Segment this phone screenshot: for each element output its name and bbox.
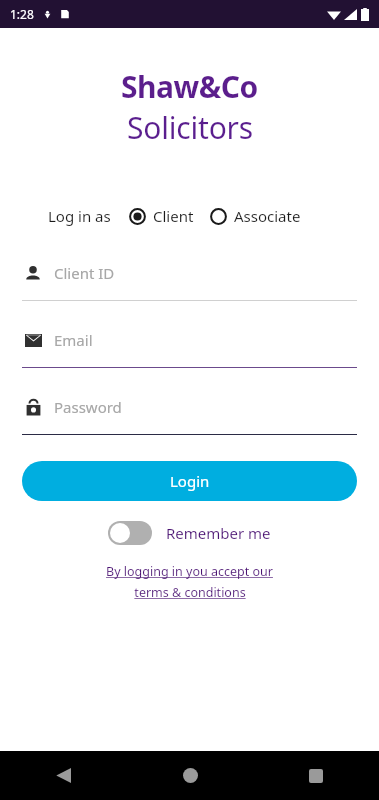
button[interactable]: Associate [210,206,301,226]
staticText: Remember me [166,523,271,543]
staticText: Client [153,206,194,226]
staticText: By logging in you accept our [106,563,273,580]
staticText: Shaw&Co [121,66,258,107]
staticText: Client ID [54,263,115,283]
button[interactable]: Login [22,461,357,501]
staticText: Email [54,330,93,350]
staticText: terms & conditions [134,584,246,601]
button[interactable]: Client ID [22,256,357,301]
staticText: Solicitors [127,107,253,148]
button[interactable]: Home [127,751,253,800]
staticText: Password [54,397,122,417]
button[interactable]: Password [22,390,357,435]
staticText: 1:28 [10,6,34,22]
button[interactable]: Remember me [108,521,271,545]
button[interactable]: Email [22,323,357,368]
button[interactable]: By logging in you accept our [0,563,379,601]
staticText: Associate [234,206,301,226]
button[interactable]: Client [129,206,194,226]
button[interactable]: Back [0,751,127,800]
button[interactable]: Recent apps [253,751,379,800]
staticText: Login [170,471,210,491]
staticText: Log in as [48,206,111,226]
